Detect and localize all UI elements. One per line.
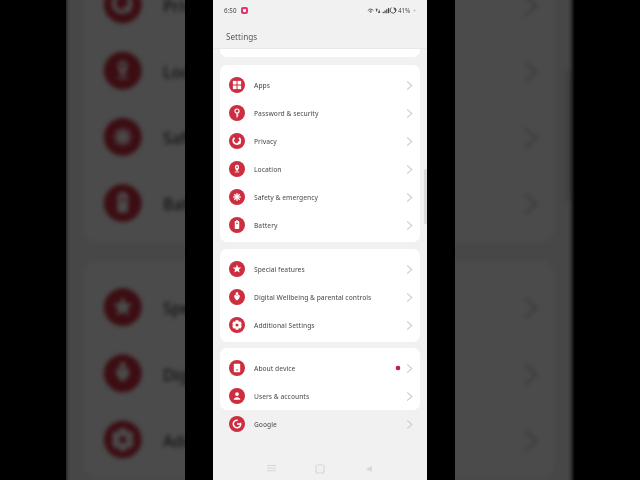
staticText: 41%: [398, 6, 411, 14]
staticText: Battery: [163, 194, 518, 215]
staticText: Google: [254, 420, 404, 429]
staticText: Digital Wellbeing & parental controls: [163, 364, 518, 385]
staticText: Additional Settings: [254, 321, 404, 330]
button[interactable]: Home: [312, 461, 328, 477]
staticText: Digital Wellbeing & parental controls: [254, 293, 404, 302]
button[interactable]: Google: [220, 410, 420, 438]
staticText: Battery: [254, 221, 404, 230]
staticText: About device: [254, 364, 395, 373]
button[interactable]: Apps: [220, 71, 420, 99]
button[interactable]: Location: [83, 38, 556, 104]
button[interactable]: Safety & emergency: [83, 104, 556, 170]
staticText: Users & accounts: [254, 392, 404, 401]
staticText: 6:50: [224, 6, 237, 15]
staticText: Settings: [226, 31, 258, 42]
staticText: Safety & emergency: [254, 193, 404, 202]
staticText: Location: [163, 61, 518, 82]
button[interactable]: Digital Wellbeing & parental controls: [83, 340, 556, 406]
button[interactable]: Additional Settings: [83, 406, 556, 473]
staticText: Special features: [254, 265, 404, 274]
staticText: Additional Settings: [163, 430, 518, 451]
staticText: Password & security: [254, 109, 404, 118]
button[interactable]: Privacy: [220, 127, 420, 155]
button[interactable]: Recents: [263, 461, 279, 477]
staticText: Apps: [254, 81, 404, 90]
button[interactable]: Safety & emergency: [220, 183, 420, 211]
button[interactable]: Special features: [83, 274, 556, 340]
staticText: Privacy: [163, 0, 518, 16]
button[interactable]: Back: [361, 461, 377, 477]
staticText: Special features: [163, 298, 518, 319]
button[interactable]: Location: [220, 155, 420, 183]
button[interactable]: Digital Wellbeing & parental controls: [220, 283, 420, 311]
button[interactable]: Additional Settings: [220, 311, 420, 339]
staticText: Location: [254, 165, 404, 174]
button[interactable]: Privacy: [83, 0, 556, 38]
staticText: Safety & emergency: [163, 127, 518, 149]
button[interactable]: Special features: [220, 255, 420, 283]
button[interactable]: Battery: [83, 170, 556, 236]
button[interactable]: Users & accounts: [220, 382, 420, 410]
staticText: Privacy: [254, 137, 404, 146]
button[interactable]: About device: [220, 354, 420, 382]
button[interactable]: Password & security: [220, 99, 420, 127]
button[interactable]: Battery: [220, 211, 420, 239]
